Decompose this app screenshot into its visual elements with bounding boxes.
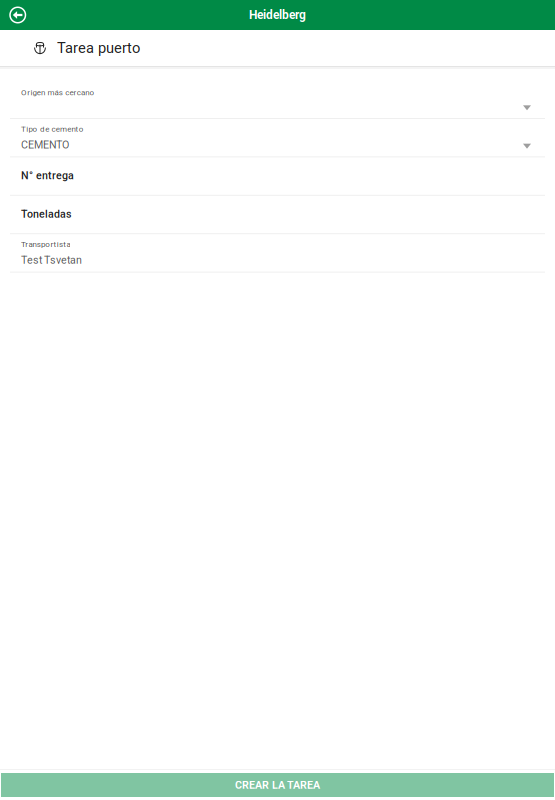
button[interactable]: N° entrega	[10, 157, 545, 196]
button[interactable]: Transportista	[10, 234, 545, 273]
staticText: Test Tsvetan	[21, 254, 82, 266]
staticText: Transportista	[21, 239, 70, 249]
staticText: Toneladas	[21, 208, 71, 220]
staticText: N° entrega	[21, 169, 74, 182]
button[interactable]: Origen más cercano	[10, 81, 545, 119]
button[interactable]: Tipo de cemento	[10, 119, 545, 157]
button[interactable]: CREAR LA TAREA	[1, 773, 554, 797]
staticText: CEMENTO	[21, 139, 69, 151]
button[interactable]: Toneladas	[10, 196, 545, 234]
staticText: Tarea puerto	[57, 39, 140, 57]
staticText: Origen más cercano	[21, 88, 94, 97]
button[interactable]: Back	[0, 0, 31, 30]
staticText: Heidelberg	[249, 8, 306, 22]
staticText: Tipo de cemento	[21, 124, 84, 134]
staticText: CREAR LA TAREA	[235, 779, 320, 791]
